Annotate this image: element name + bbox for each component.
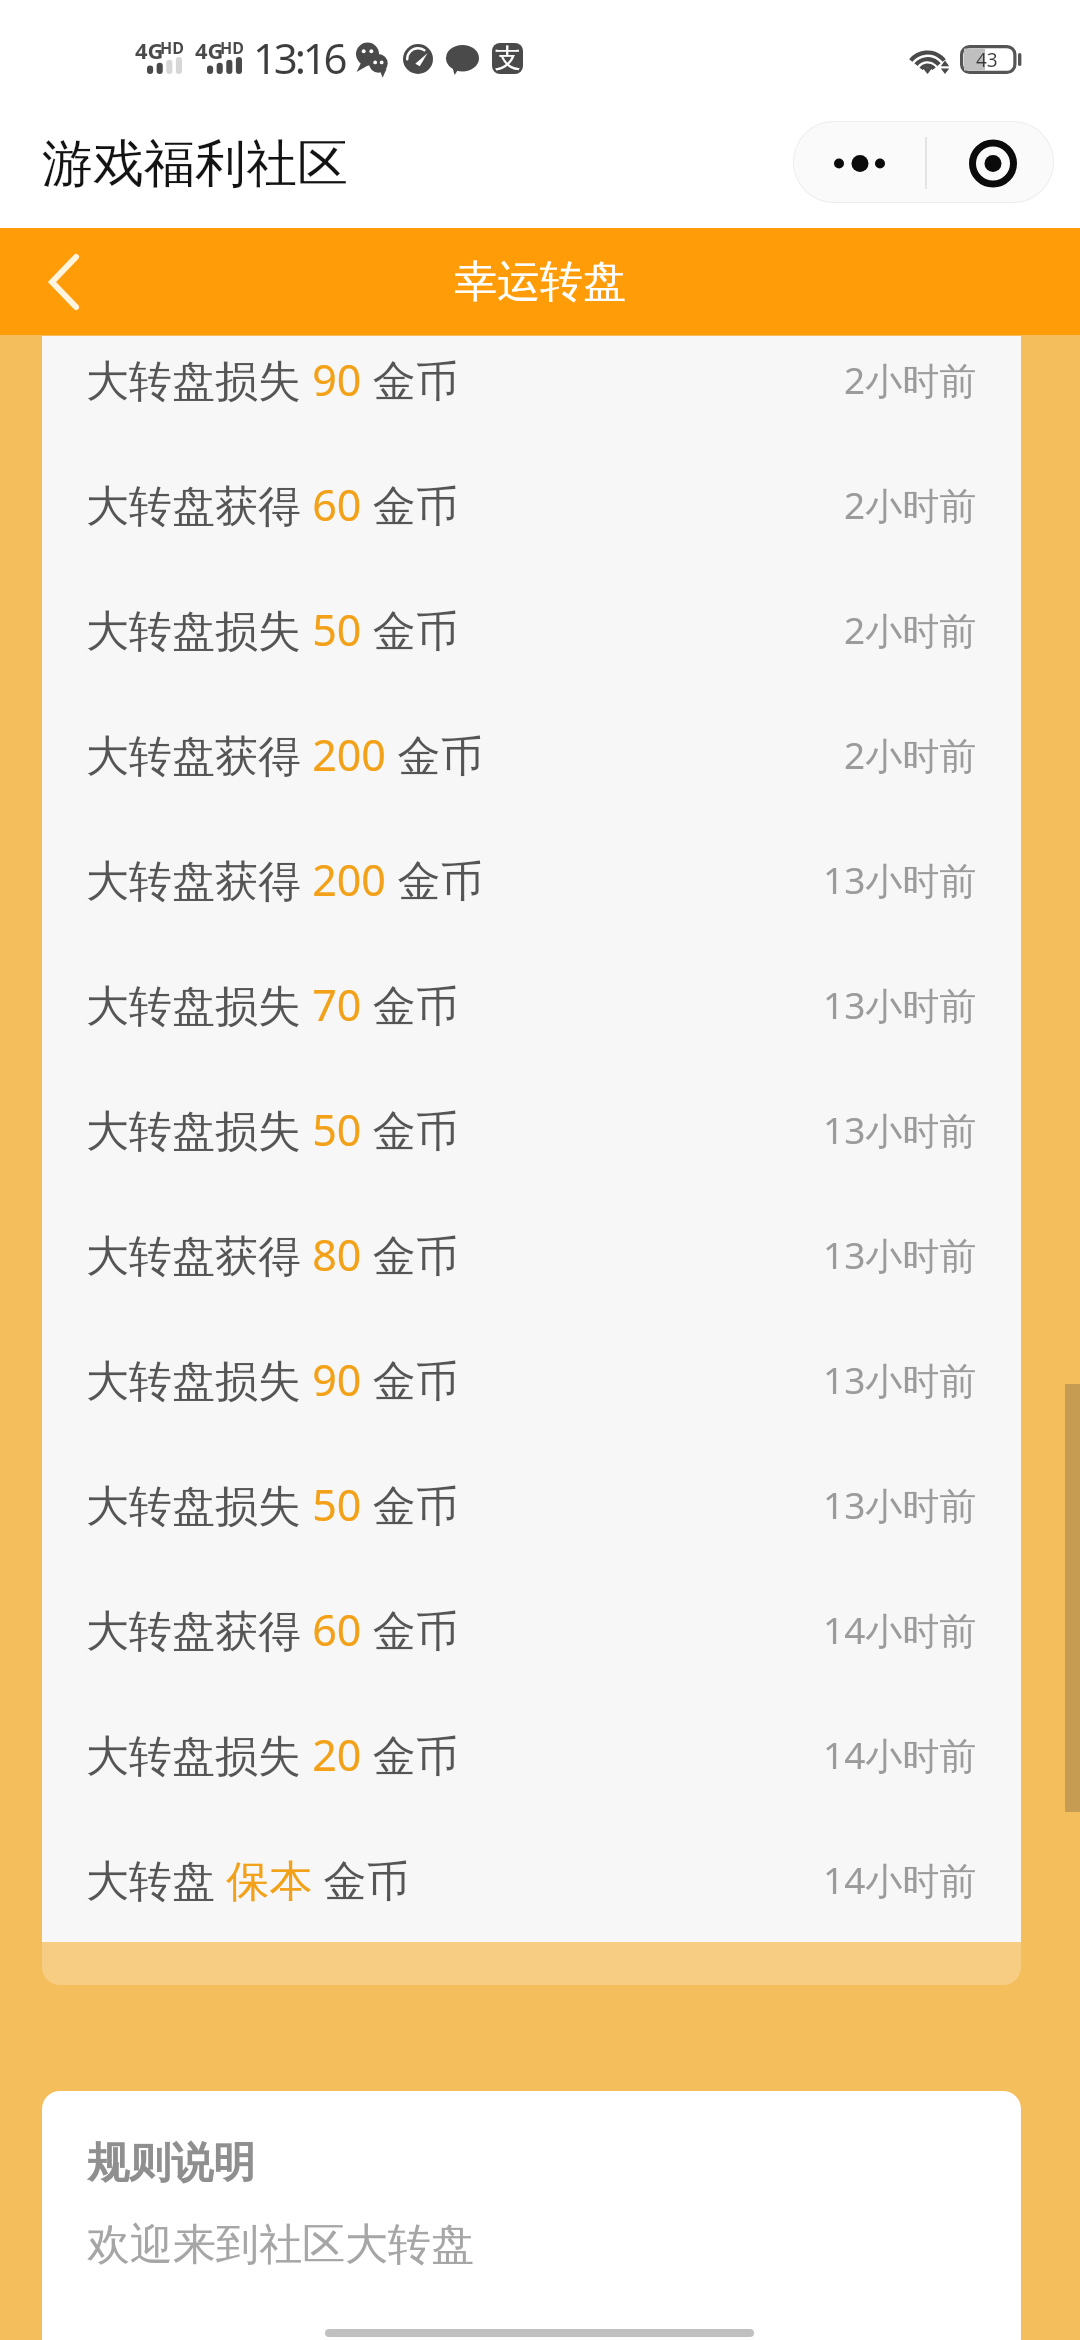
staticText: 大转盘 保本 金币 bbox=[86, 1850, 410, 1909]
staticText: 13小时前 bbox=[823, 1229, 977, 1280]
staticText: 大转盘损失 50 金币 bbox=[86, 1475, 459, 1534]
staticText: 2小时前 bbox=[844, 479, 977, 530]
staticText: 大转盘损失 20 金币 bbox=[86, 1725, 459, 1784]
staticText: 大转盘获得 200 金币 bbox=[86, 850, 484, 909]
staticText: 幸运转盘 bbox=[454, 255, 626, 309]
staticText: 13:16 bbox=[253, 29, 345, 86]
staticText: HD bbox=[160, 37, 184, 59]
staticText: 13小时前 bbox=[823, 979, 977, 1030]
staticText: 2小时前 bbox=[844, 354, 977, 405]
staticText: 2小时前 bbox=[844, 604, 977, 655]
button[interactable]: 大转盘获得 60 金币 bbox=[42, 442, 1021, 567]
button[interactable]: Mini program menu bbox=[793, 121, 1054, 203]
staticText: 13小时前 bbox=[823, 854, 977, 905]
button[interactable]: Back bbox=[26, 228, 98, 335]
staticText: 4G bbox=[135, 35, 164, 65]
button[interactable]: 大转盘 保本 金币 bbox=[42, 1817, 1021, 1942]
staticText: 大转盘损失 50 金币 bbox=[86, 1100, 459, 1159]
staticText: 14小时前 bbox=[823, 1729, 977, 1780]
staticText: 2小时前 bbox=[844, 729, 977, 780]
button[interactable]: 大转盘损失 50 金币 bbox=[42, 1442, 1021, 1567]
button[interactable]: 大转盘损失 50 金币 bbox=[42, 1067, 1021, 1192]
staticText: 大转盘获得 60 金币 bbox=[86, 475, 459, 534]
staticText: HD bbox=[220, 37, 244, 59]
button[interactable]: 大转盘损失 50 金币 bbox=[42, 567, 1021, 692]
staticText: 大转盘损失 90 金币 bbox=[86, 1350, 459, 1409]
staticText: 13小时前 bbox=[823, 1354, 977, 1405]
staticText: 14小时前 bbox=[823, 1604, 977, 1655]
button[interactable]: 大转盘获得 200 金币 bbox=[42, 817, 1021, 942]
button[interactable]: 大转盘获得 80 金币 bbox=[42, 1192, 1021, 1317]
staticText: 13小时前 bbox=[823, 1479, 977, 1530]
staticText: 游戏福利社区 bbox=[42, 132, 348, 196]
button[interactable]: 大转盘获得 60 金币 bbox=[42, 1567, 1021, 1692]
staticText: 规则说明 bbox=[87, 2137, 255, 2190]
button[interactable]: 大转盘损失 70 金币 bbox=[42, 942, 1021, 1067]
button[interactable]: 大转盘损失 90 金币 bbox=[42, 1317, 1021, 1442]
button[interactable]: 大转盘损失 20 金币 bbox=[42, 1692, 1021, 1817]
button[interactable]: 大转盘损失 90 金币 bbox=[42, 336, 1021, 442]
button[interactable]: 大转盘获得 200 金币 bbox=[42, 692, 1021, 817]
staticText: 大转盘损失 90 金币 bbox=[86, 350, 459, 409]
staticText: 大转盘获得 200 金币 bbox=[86, 725, 484, 784]
staticText: 13小时前 bbox=[823, 1104, 977, 1155]
staticText: 14小时前 bbox=[823, 1854, 977, 1905]
staticText: 大转盘损失 50 金币 bbox=[86, 600, 459, 659]
staticText: 43 bbox=[976, 47, 998, 73]
staticText: 大转盘损失 70 金币 bbox=[86, 975, 459, 1034]
staticText: 支 bbox=[495, 43, 521, 73]
staticText: 欢迎来到社区大转盘 bbox=[87, 2218, 474, 2272]
staticText: 大转盘获得 60 金币 bbox=[86, 1600, 459, 1659]
staticText: 4G bbox=[195, 35, 224, 65]
staticText: 大转盘获得 80 金币 bbox=[86, 1225, 459, 1284]
